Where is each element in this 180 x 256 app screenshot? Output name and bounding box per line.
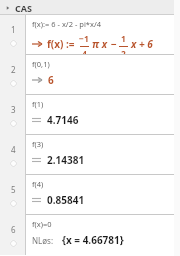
button[interactable]: 6 xyxy=(0,215,180,255)
staticText: 0.85841 xyxy=(47,193,85,207)
staticText: −1 xyxy=(79,33,89,45)
staticText: NLøs: xyxy=(32,235,54,246)
staticText: 6 xyxy=(48,73,54,87)
staticText: 4 xyxy=(82,48,87,55)
staticText: x + 6 xyxy=(131,37,153,51)
staticText: f(x) := xyxy=(47,37,75,51)
staticText: f(1) xyxy=(32,99,44,109)
staticText: f(4) xyxy=(32,179,44,189)
button[interactable]: Expand CAS panel xyxy=(0,0,180,15)
staticText: 1 xyxy=(11,24,16,35)
button[interactable]: 1 xyxy=(0,15,180,55)
staticText: 1 xyxy=(121,33,126,45)
staticText: f(3) xyxy=(32,139,44,149)
staticText: 2 xyxy=(11,64,16,75)
other: Expand CAS panel xyxy=(4,4,12,12)
button[interactable]: 5 xyxy=(0,175,180,215)
staticText: f(0,1) xyxy=(32,59,50,69)
staticText: f(x)=0 xyxy=(32,219,52,229)
staticText: 4 xyxy=(11,144,16,155)
staticText: 4.7146 xyxy=(47,113,79,127)
button[interactable]: 3 xyxy=(0,95,180,135)
staticText: 5 xyxy=(11,184,16,195)
staticText: 3 xyxy=(11,104,16,115)
staticText: {x = 4.66781} xyxy=(62,233,124,247)
button[interactable]: 4 xyxy=(0,135,180,175)
staticText: CAS xyxy=(15,2,32,14)
staticText: f(x):= 6 - x/2 - pi*x/4 xyxy=(32,19,101,29)
staticText: 6 xyxy=(11,224,16,235)
staticText: − xyxy=(111,37,117,51)
button[interactable]: 2 xyxy=(0,55,180,95)
staticText: 2.14381 xyxy=(47,153,85,167)
staticText: π x xyxy=(92,37,108,51)
staticText: 2 xyxy=(121,48,126,55)
